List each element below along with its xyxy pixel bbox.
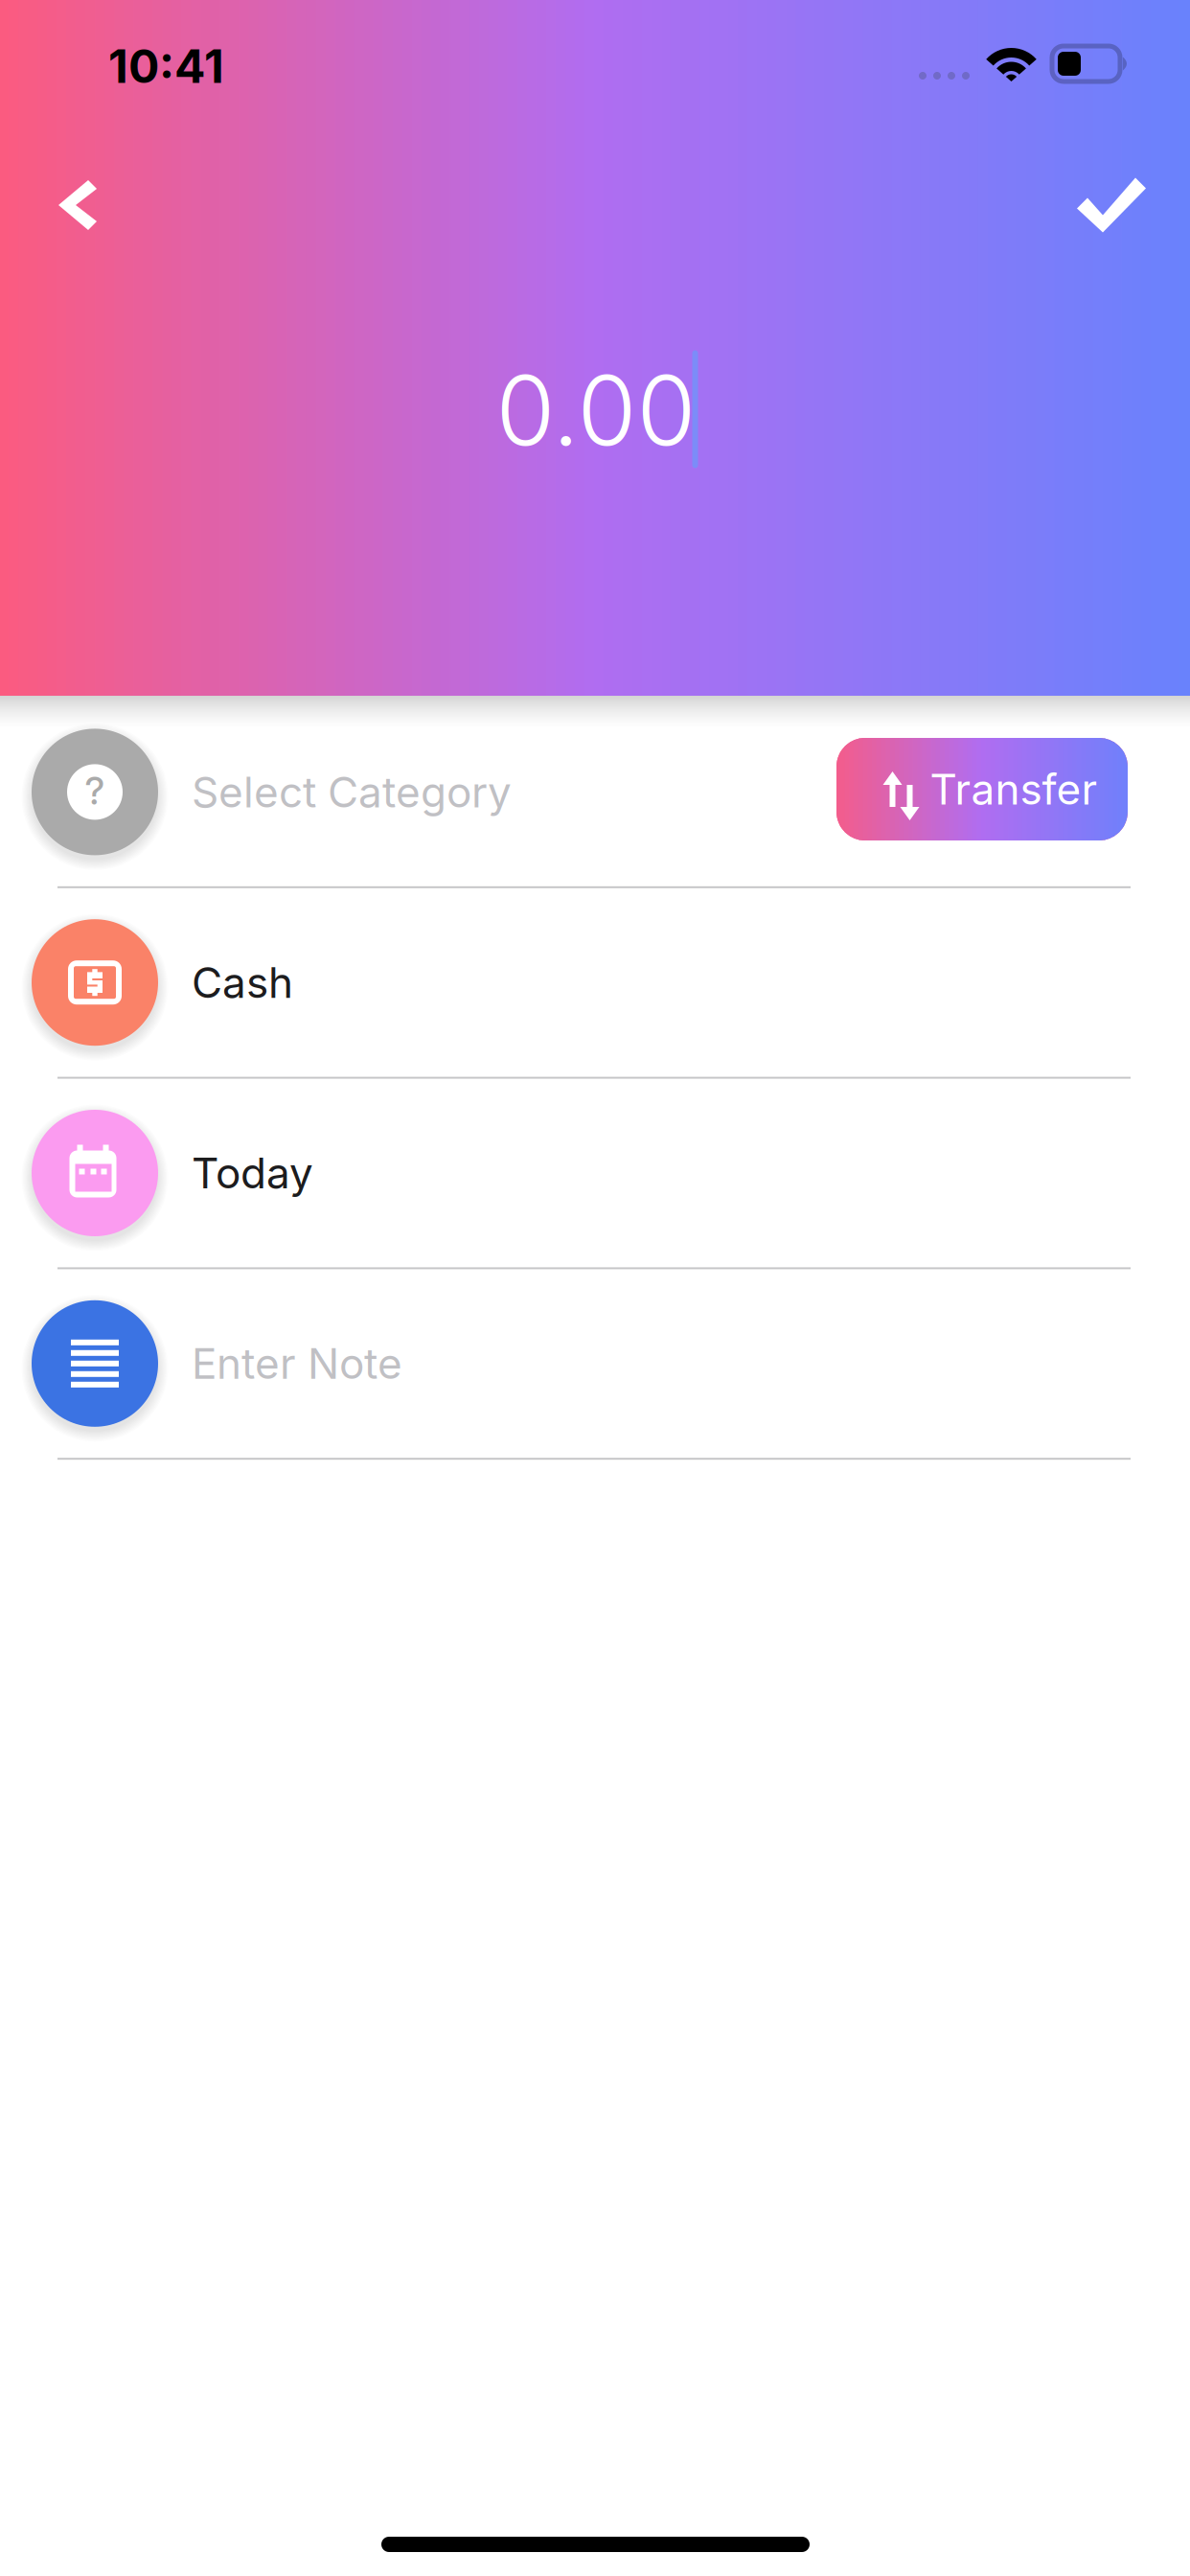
button[interactable]: ? (0, 698, 1190, 888)
button[interactable]: Back (14, 148, 141, 263)
staticText: Enter Note (192, 1338, 402, 1389)
staticText: Today (192, 1148, 313, 1198)
staticText: Transfer (930, 764, 1098, 815)
staticText: 0.00 (496, 352, 696, 468)
button[interactable]: Today (0, 1079, 1190, 1269)
button[interactable]: Transfer (836, 738, 1128, 840)
button[interactable]: Save (1044, 148, 1179, 263)
staticText: Cash (192, 957, 293, 1008)
button[interactable]: Cash (0, 888, 1190, 1079)
button[interactable]: Enter Note (0, 1269, 1190, 1460)
staticText: Select Category (192, 766, 512, 817)
staticText: ? (85, 769, 105, 813)
staticText: 10:41 (108, 38, 224, 94)
